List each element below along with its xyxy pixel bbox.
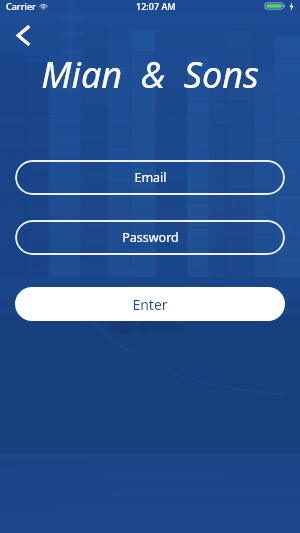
staticText: Mian & Sons	[41, 50, 259, 99]
staticText: Email	[134, 169, 167, 186]
button[interactable]: Email	[15, 160, 285, 195]
staticText: Enter	[132, 295, 168, 314]
staticText: Password	[122, 229, 179, 246]
button[interactable]: Enter	[15, 287, 285, 321]
staticText: Carrier	[6, 0, 36, 12]
button[interactable]: Password	[15, 220, 285, 255]
staticText: 12:07 AM	[136, 0, 176, 12]
button[interactable]: Back	[8, 20, 38, 50]
